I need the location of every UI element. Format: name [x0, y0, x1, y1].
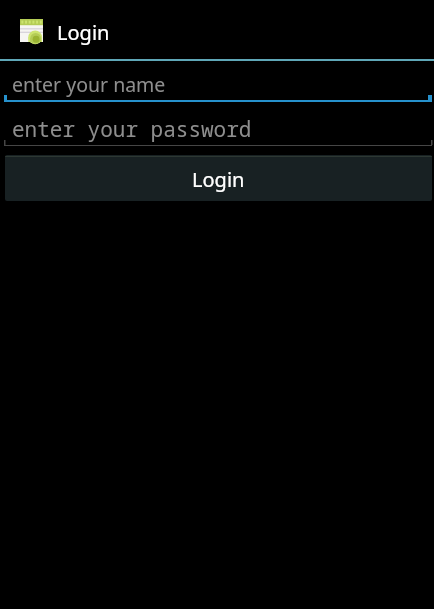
staticText: Login: [57, 19, 110, 46]
other: App icon: [20, 19, 43, 42]
staticText: Login: [192, 166, 245, 193]
staticText: enter your name: [12, 71, 166, 98]
button[interactable]: App icon: [0, 0, 434, 59]
button[interactable]: enter your name: [0, 62, 434, 104]
staticText: enter your password: [12, 115, 252, 144]
button[interactable]: enter your password: [0, 106, 434, 147]
button[interactable]: Login: [5, 155, 432, 201]
